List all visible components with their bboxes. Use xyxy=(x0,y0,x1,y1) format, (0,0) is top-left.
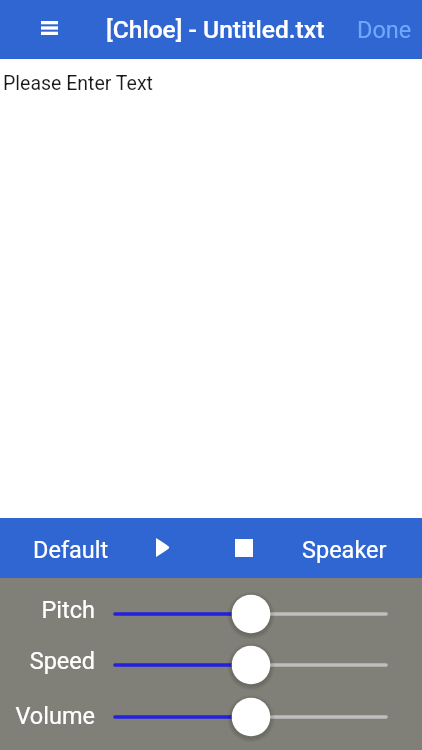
staticText: [Chloe] - Untitled.txt xyxy=(106,15,325,44)
button[interactable]: Please Enter Text xyxy=(0,59,422,518)
staticText: Speaker xyxy=(302,536,387,564)
staticText: Speed xyxy=(0,647,95,675)
staticText: Default xyxy=(33,536,109,564)
staticText: Done xyxy=(357,16,412,44)
button[interactable]: Speaker xyxy=(267,518,422,578)
button[interactable]: Speed xyxy=(115,643,386,687)
button[interactable]: Volume xyxy=(115,695,386,739)
button[interactable]: Stop xyxy=(204,518,284,578)
button[interactable]: Play xyxy=(122,518,202,578)
button[interactable]: Menu xyxy=(30,11,68,49)
button[interactable]: Default xyxy=(0,518,142,578)
button[interactable]: Done xyxy=(349,0,422,59)
staticText: Pitch xyxy=(0,596,95,624)
staticText: Please Enter Text xyxy=(3,72,153,95)
button[interactable]: Pitch xyxy=(115,592,386,636)
staticText: Volume xyxy=(0,702,95,730)
